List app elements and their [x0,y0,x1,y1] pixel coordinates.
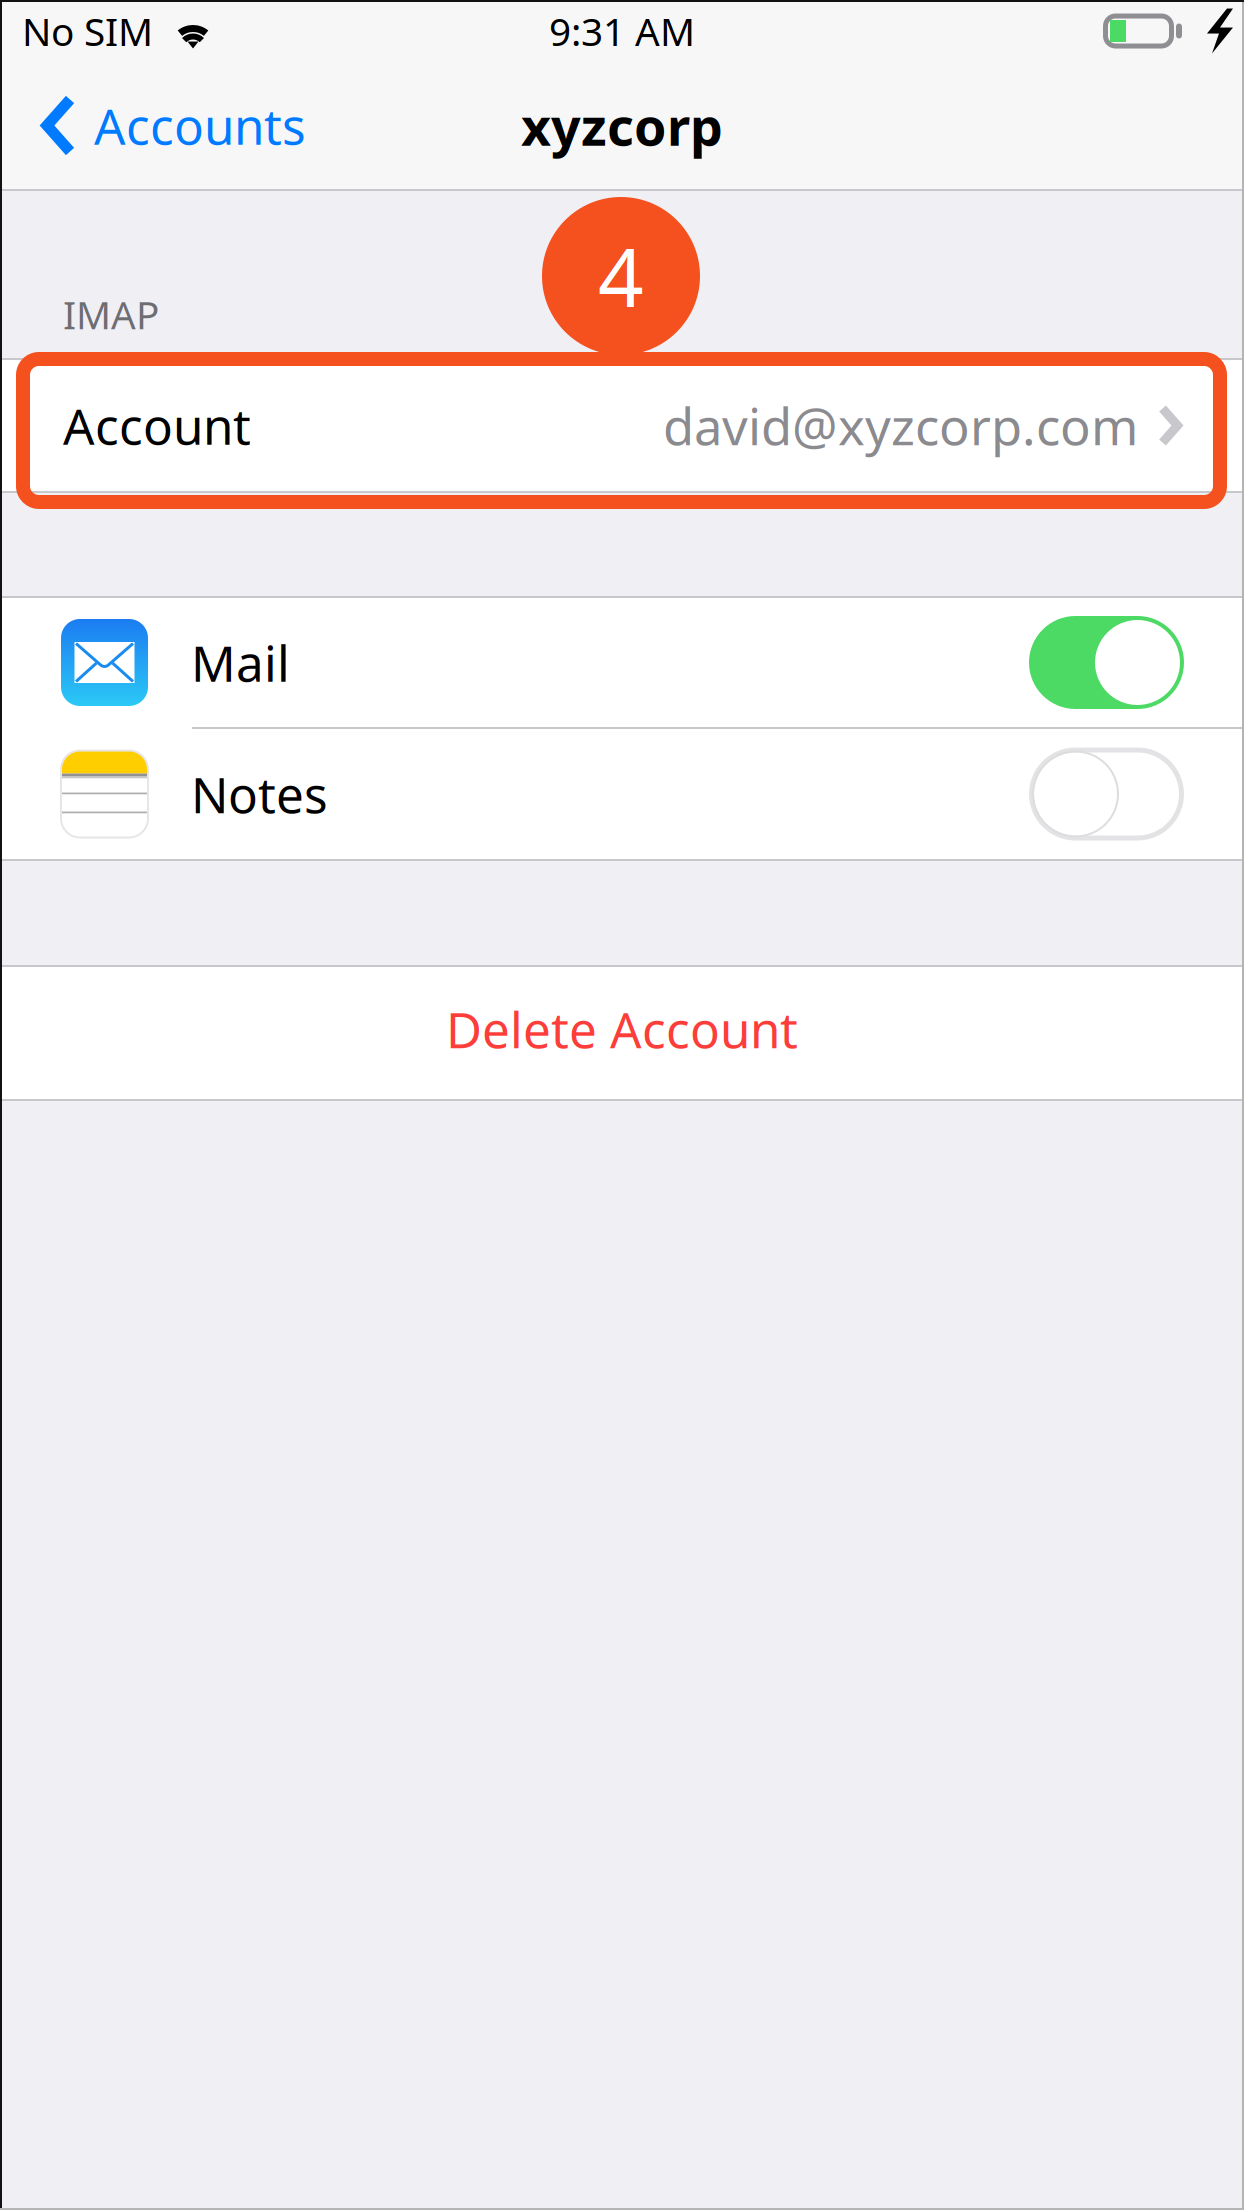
button[interactable]: Notes toggle [1029,747,1184,840]
button[interactable]: Accounts [0,62,326,189]
button[interactable]: Mail toggle [1029,616,1184,709]
staticText: 9:31 AM [549,5,695,57]
staticText: david@xyzcorp.com [663,392,1138,459]
staticText: Mail [191,630,290,695]
button[interactable]: Account [0,360,1244,491]
staticText: 4 [598,223,644,329]
button[interactable]: Delete Account [0,967,1244,1099]
staticText: Accounts [94,93,306,158]
staticText: xyzcorp [521,91,723,160]
staticText: Delete Account [446,996,798,1062]
staticText: No SIM [22,5,153,57]
staticText: IMAP [63,289,159,340]
staticText: Account [63,393,251,458]
staticText: Notes [191,761,328,827]
